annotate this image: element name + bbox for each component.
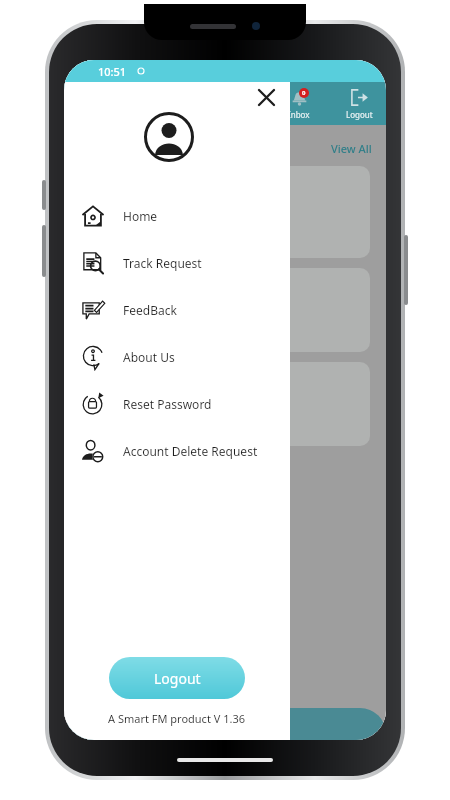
button[interactable]: FeedBack (64, 286, 290, 333)
staticText: 0 (302, 89, 306, 97)
button[interactable]: About Us (64, 333, 290, 380)
staticText: A Smart FM product V 1.36 (108, 711, 246, 726)
button[interactable]: Track Request (64, 239, 290, 286)
staticText: Account Delete Request (123, 443, 258, 459)
button[interactable]: 0 (278, 88, 320, 120)
staticText: Reset Password (123, 396, 212, 412)
staticText: Logout (154, 669, 201, 688)
staticText: 10:51 (98, 64, 127, 79)
staticText: FeedBack (123, 302, 177, 318)
button[interactable]: Logout (109, 657, 245, 699)
staticText: Home (123, 208, 158, 224)
staticText: About Us (123, 349, 175, 365)
staticText: Track Request (123, 255, 202, 271)
button[interactable]: Close menu (254, 85, 278, 109)
button[interactable]: Account Delete Request (64, 427, 290, 474)
button[interactable]: Track Request (80, 268, 370, 352)
button[interactable]: Reset Password (64, 380, 290, 427)
button[interactable]: Logout (338, 88, 380, 120)
staticText: Logout (346, 109, 373, 120)
button[interactable]: About Us (80, 362, 370, 446)
button[interactable]: Home (64, 192, 290, 239)
staticText: Inbox (288, 109, 310, 120)
staticText: View All (331, 141, 372, 156)
